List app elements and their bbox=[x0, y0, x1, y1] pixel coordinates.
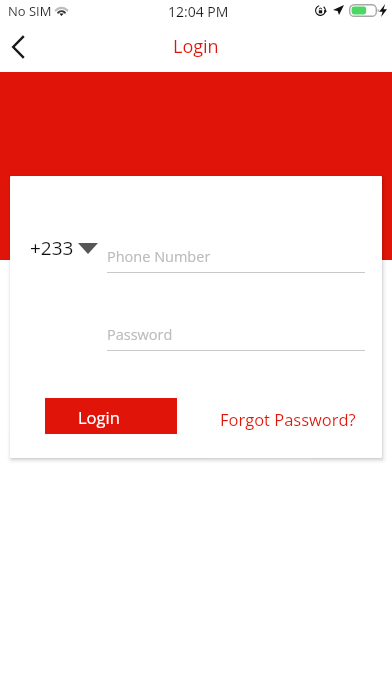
button[interactable]: Login bbox=[45, 398, 177, 434]
staticText: Password bbox=[107, 325, 173, 345]
button[interactable]: Back bbox=[0, 26, 44, 70]
staticText: Login bbox=[78, 406, 120, 428]
staticText: Forgot Password? bbox=[220, 408, 356, 430]
staticText: No SIM bbox=[8, 2, 52, 20]
staticText: 12:04 PM bbox=[168, 2, 229, 21]
button[interactable]: Forgot Password? bbox=[216, 398, 366, 434]
staticText: +233 bbox=[30, 235, 74, 261]
staticText: Phone Number bbox=[107, 247, 211, 267]
button[interactable]: +233 bbox=[30, 235, 94, 261]
staticText: Login bbox=[173, 34, 219, 59]
